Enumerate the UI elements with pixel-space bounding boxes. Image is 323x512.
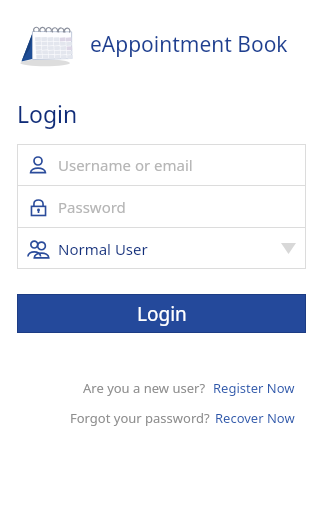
button[interactable]: Login	[17, 294, 306, 333]
other: eAppointment Book logo	[16, 18, 78, 70]
staticText: Are you a new user?	[83, 379, 206, 397]
staticText: Forgot your password?	[70, 409, 210, 427]
button[interactable]: Select user type, Normal User	[17, 228, 306, 269]
staticText: Username or email	[58, 155, 193, 175]
staticText: Login	[17, 98, 78, 129]
staticText: Normal User	[58, 239, 148, 259]
staticText: Password	[58, 197, 126, 217]
button[interactable]: Register Now	[213, 379, 295, 397]
staticText: Recover Now	[215, 409, 295, 427]
staticText: Register Now	[213, 379, 295, 397]
button[interactable]: Username or email	[17, 144, 306, 185]
button[interactable]: Recover Now	[215, 409, 295, 427]
staticText: eAppointment Book	[90, 30, 288, 59]
button[interactable]: Password	[17, 186, 306, 227]
staticText: Login	[137, 301, 187, 327]
